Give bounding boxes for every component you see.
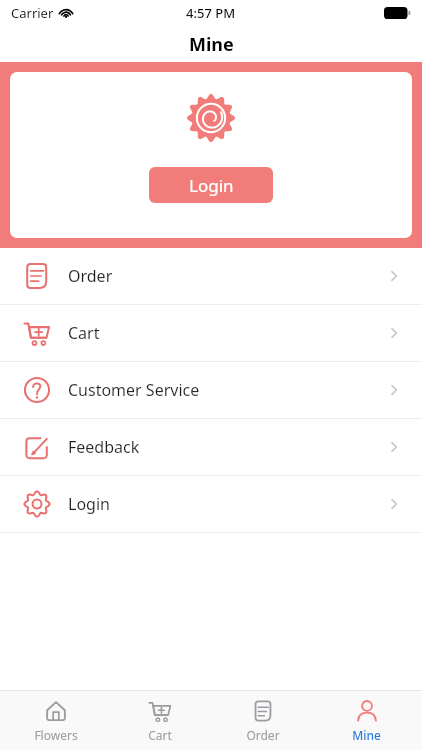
staticText: Cart (68, 322, 100, 344)
button[interactable]: Cart (0, 305, 422, 361)
staticText: 4:57 PM (186, 4, 236, 22)
button[interactable]: Order (0, 248, 422, 304)
staticText: Cart (148, 727, 172, 743)
button[interactable]: Mine (319, 694, 414, 748)
button[interactable]: Profile avatar (187, 94, 235, 142)
button[interactable]: Order (215, 694, 310, 748)
staticText: Mine (352, 727, 381, 743)
button[interactable]: Feedback (0, 419, 422, 475)
staticText: Order (246, 727, 280, 743)
staticText: Login (189, 174, 234, 197)
button[interactable]: Flowers (8, 694, 103, 748)
button[interactable]: Customer Service (0, 362, 422, 418)
staticText: Feedback (68, 436, 140, 458)
staticText: Carrier (11, 4, 54, 22)
button[interactable]: Login (149, 167, 273, 203)
button[interactable]: Login (0, 476, 422, 532)
staticText: Flowers (34, 727, 78, 743)
staticText: Mine (189, 32, 234, 57)
button[interactable]: Cart (112, 694, 207, 748)
staticText: Order (68, 265, 113, 287)
staticText: Login (68, 493, 110, 515)
staticText: Customer Service (68, 379, 200, 401)
